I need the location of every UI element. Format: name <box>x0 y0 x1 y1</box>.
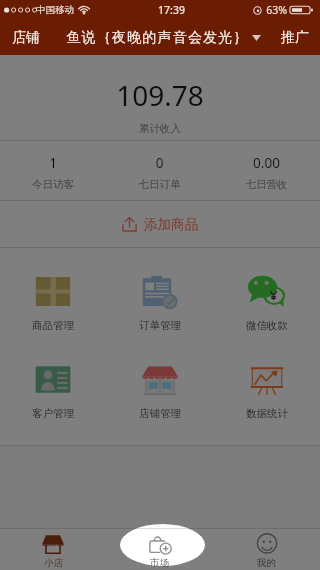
button[interactable]: 推广 <box>275 22 315 54</box>
staticText: 中国移动 <box>36 4 74 16</box>
staticText: 0 <box>106 154 213 172</box>
staticText: 今日访客 <box>0 178 106 191</box>
button[interactable]: 添加商品 <box>0 201 320 247</box>
staticText: 订单管理 <box>139 319 181 332</box>
staticText: 0.00 <box>213 154 320 172</box>
button[interactable]: 店铺管理 <box>106 347 213 435</box>
button[interactable]: 鱼说｛夜晚的声音会发光｝ <box>66 23 261 53</box>
staticText: 店铺管理 <box>139 407 181 420</box>
staticText: 109.78 <box>0 76 320 114</box>
staticText: 添加商品 <box>144 216 198 233</box>
staticText: 数据统计 <box>246 407 288 420</box>
staticText: 市场 <box>150 557 169 569</box>
staticText: 客户管理 <box>32 407 74 420</box>
staticText: 微信收款 <box>246 319 288 332</box>
staticText: 我的 <box>257 557 276 569</box>
button[interactable]: 0.00 <box>213 141 320 200</box>
staticText: 商品管理 <box>32 319 74 332</box>
button[interactable]: 1 <box>0 141 106 200</box>
button[interactable]: 微信收款 <box>213 259 320 347</box>
staticText: 七日订单 <box>106 178 213 191</box>
button[interactable]: 订单管理 <box>106 259 213 347</box>
button[interactable]: 店铺 <box>6 22 46 54</box>
staticText: 17:39 <box>158 3 185 17</box>
staticText: 累计收入 <box>0 122 320 135</box>
button[interactable]: 0 <box>106 141 213 200</box>
button[interactable]: 商品管理 <box>0 259 106 347</box>
staticText: 店铺 <box>12 29 40 47</box>
staticText: 63% <box>266 3 287 17</box>
staticText: 推广 <box>281 29 309 47</box>
button[interactable]: 小店 <box>0 528 106 570</box>
staticText: 鱼说｛夜晚的声音会发光｝ <box>66 29 249 47</box>
button[interactable]: 数据统计 <box>213 347 320 435</box>
button[interactable]: 客户管理 <box>0 347 106 435</box>
staticText: 1 <box>0 154 106 172</box>
staticText: 七日营收 <box>213 178 320 191</box>
button[interactable]: 我的 <box>213 528 320 570</box>
staticText: 小店 <box>44 557 63 569</box>
button[interactable]: 市场 <box>106 528 213 570</box>
